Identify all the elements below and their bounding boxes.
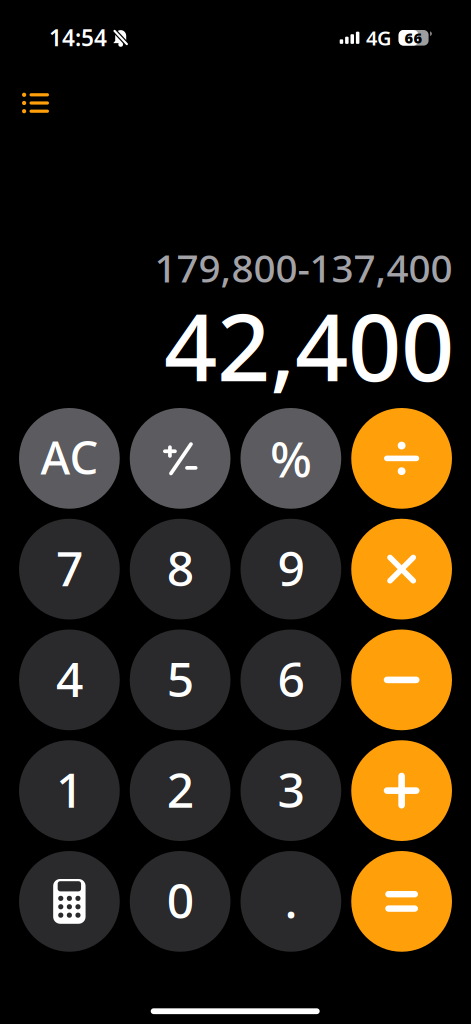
button[interactable]: Equals bbox=[351, 851, 452, 952]
button[interactable]: All Clear bbox=[19, 408, 120, 509]
button[interactable]: Add bbox=[351, 740, 452, 841]
button[interactable]: 2 bbox=[130, 740, 231, 841]
staticText: 66 bbox=[405, 28, 423, 48]
button[interactable]: Calculator bbox=[19, 851, 120, 952]
staticText: 9 bbox=[277, 536, 304, 599]
staticText: 4 bbox=[56, 646, 83, 710]
button[interactable]: Divide bbox=[351, 408, 452, 509]
staticText: . bbox=[284, 868, 297, 932]
staticText: 1 bbox=[56, 757, 83, 821]
button[interactable]: 6 bbox=[240, 629, 341, 730]
staticText: 8 bbox=[167, 536, 194, 599]
staticText: 14:54 bbox=[49, 22, 107, 52]
staticText: 3 bbox=[277, 757, 304, 821]
staticText: 7 bbox=[56, 536, 83, 599]
button[interactable]: 3 bbox=[240, 740, 341, 841]
button[interactable]: 7 bbox=[19, 519, 120, 620]
button[interactable]: Percent bbox=[240, 408, 341, 509]
button[interactable]: 1 bbox=[19, 740, 120, 841]
staticText: 4G bbox=[366, 24, 392, 51]
button[interactable]: 5 bbox=[130, 629, 231, 730]
staticText: % bbox=[270, 426, 312, 491]
button[interactable]: History bbox=[7, 77, 63, 129]
staticText: 42,400 bbox=[164, 283, 454, 407]
staticText: 179,800-137,400 bbox=[154, 242, 452, 293]
button[interactable]: Plus Minus bbox=[130, 408, 231, 509]
button[interactable]: 4 bbox=[19, 629, 120, 730]
button[interactable]: 9 bbox=[240, 519, 341, 620]
staticText: AC bbox=[40, 427, 98, 487]
staticText: 5 bbox=[167, 646, 194, 710]
button[interactable]: 8 bbox=[130, 519, 231, 620]
button[interactable]: Subtract bbox=[351, 629, 452, 730]
staticText: 2 bbox=[167, 757, 194, 821]
staticText: 6 bbox=[277, 646, 304, 710]
staticText: 0 bbox=[167, 868, 194, 932]
button[interactable]: 0 bbox=[130, 851, 231, 952]
button[interactable]: Decimal Point bbox=[240, 851, 341, 952]
button[interactable]: Multiply bbox=[351, 519, 452, 620]
